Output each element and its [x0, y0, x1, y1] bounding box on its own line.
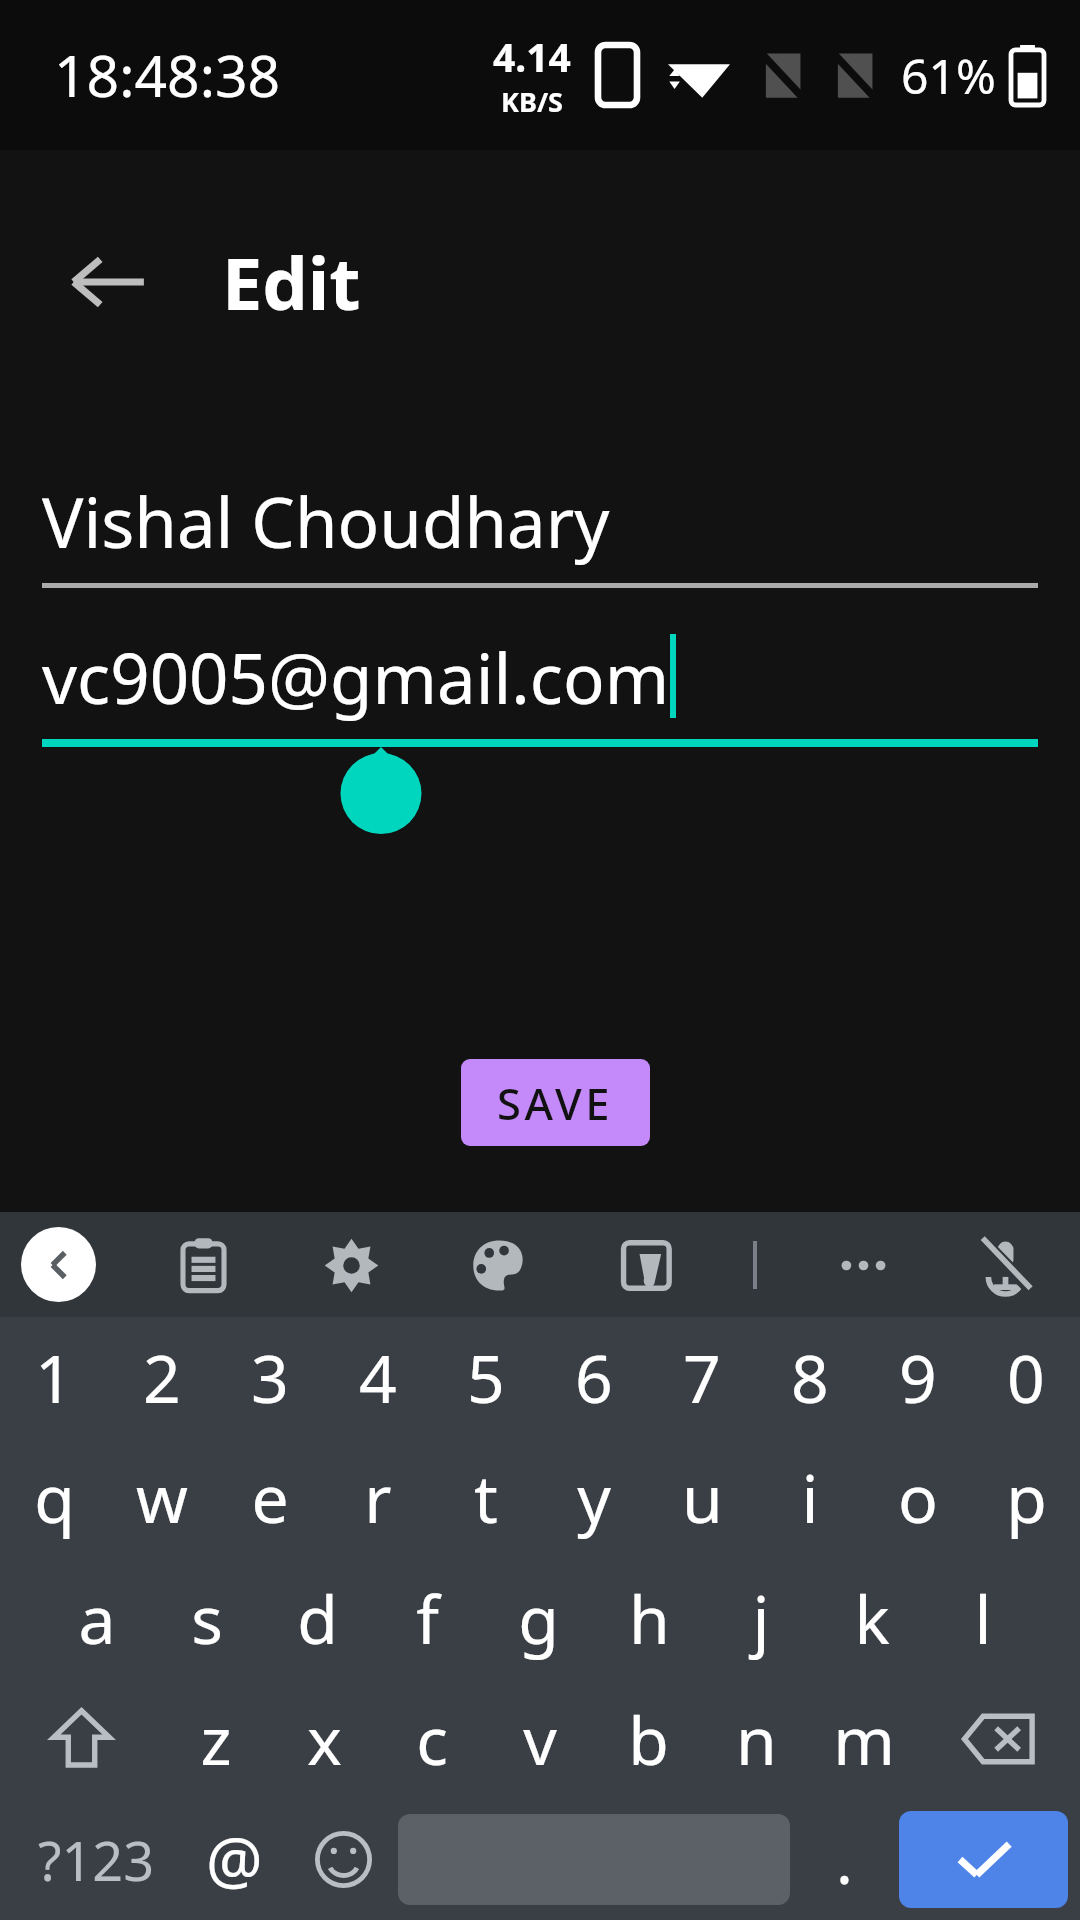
staticText: 0	[1007, 1332, 1045, 1422]
button[interactable]: a	[42, 1557, 152, 1678]
button[interactable]: s	[152, 1557, 262, 1678]
button[interactable]: Back	[36, 210, 180, 354]
button[interactable]: 4	[324, 1317, 432, 1437]
button[interactable]: b	[594, 1678, 702, 1799]
button[interactable]: More options	[821, 1223, 905, 1307]
button[interactable]: t	[432, 1437, 540, 1557]
button[interactable]: 2	[108, 1317, 216, 1437]
staticText: 7	[683, 1332, 721, 1422]
button[interactable]: Backspace	[918, 1678, 1080, 1799]
staticText: u	[682, 1452, 723, 1542]
button[interactable]: Theme	[457, 1223, 541, 1307]
staticText: 4.14	[493, 30, 571, 83]
button[interactable]: l	[927, 1557, 1038, 1678]
button[interactable]: Emoji	[289, 1799, 398, 1920]
button[interactable]: Collapse toolbar	[21, 1227, 96, 1302]
staticText: 9	[899, 1332, 937, 1422]
button[interactable]: x	[270, 1678, 378, 1799]
button[interactable]: Done	[899, 1811, 1068, 1908]
staticText: n	[736, 1694, 777, 1784]
button[interactable]: .	[790, 1799, 899, 1920]
button[interactable]: u	[648, 1437, 756, 1557]
staticText: j	[752, 1573, 770, 1663]
button[interactable]: vc9005@gmail.com	[42, 630, 1038, 837]
button[interactable]: Resize keyboard	[605, 1223, 689, 1307]
button[interactable]: ?123	[12, 1799, 180, 1920]
staticText: 8	[791, 1332, 829, 1422]
staticText: p	[1006, 1452, 1047, 1542]
staticText: a	[78, 1573, 116, 1663]
staticText: q	[34, 1452, 75, 1542]
button[interactable]: p	[972, 1437, 1080, 1557]
staticText: vc9005@gmail.com	[42, 630, 670, 724]
staticText: k	[854, 1573, 890, 1663]
button[interactable]: 9	[864, 1317, 972, 1437]
staticText: Edit	[222, 233, 361, 331]
staticText: z	[200, 1694, 232, 1784]
button[interactable]: 1	[0, 1317, 108, 1437]
button[interactable]: i	[756, 1437, 864, 1557]
button[interactable]: o	[864, 1437, 972, 1557]
button[interactable]: z	[162, 1678, 270, 1799]
staticText: g	[518, 1573, 559, 1663]
staticText: h	[629, 1573, 670, 1663]
button[interactable]: r	[324, 1437, 432, 1557]
button[interactable]: Settings	[309, 1223, 393, 1307]
staticText: w	[136, 1452, 188, 1542]
staticText: l	[974, 1573, 992, 1663]
button[interactable]: Clipboard	[161, 1223, 245, 1307]
button[interactable]: h	[594, 1557, 705, 1678]
button[interactable]: e	[216, 1437, 324, 1557]
button[interactable]: 3	[216, 1317, 324, 1437]
button[interactable]: v	[486, 1678, 594, 1799]
button[interactable]: m	[810, 1678, 918, 1799]
button[interactable]: n	[702, 1678, 810, 1799]
button[interactable]: g	[483, 1557, 594, 1678]
button[interactable]: 8	[756, 1317, 864, 1437]
staticText: y	[577, 1452, 611, 1542]
button[interactable]: f	[372, 1557, 483, 1678]
staticText: 3	[251, 1332, 289, 1422]
staticText: .	[836, 1817, 853, 1903]
staticText: b	[628, 1694, 669, 1784]
staticText: 61%	[901, 43, 996, 108]
staticText: m	[833, 1694, 895, 1784]
button[interactable]: 0	[972, 1317, 1080, 1437]
staticText: Vishal Choudhary	[42, 474, 610, 568]
button[interactable]: k	[816, 1557, 927, 1678]
button[interactable]: 5	[432, 1317, 540, 1437]
staticText: 18:48:38	[54, 36, 281, 114]
button[interactable]: SAVE	[461, 1059, 650, 1146]
staticText: s	[191, 1573, 223, 1663]
staticText: 2	[143, 1332, 181, 1422]
staticText: SAVE	[497, 1073, 614, 1132]
staticText: f	[416, 1573, 439, 1663]
staticText: t	[474, 1452, 498, 1542]
staticText: KB/S	[501, 83, 563, 120]
button[interactable]: y	[540, 1437, 648, 1557]
button[interactable]: q	[0, 1437, 108, 1557]
staticText: r	[364, 1452, 392, 1542]
staticText: o	[898, 1452, 938, 1542]
staticText: e	[251, 1452, 289, 1542]
staticText: 5	[467, 1332, 505, 1422]
button[interactable]: @	[180, 1799, 289, 1920]
staticText: 4	[359, 1332, 397, 1422]
staticText: @	[206, 1817, 263, 1903]
button[interactable]: Vishal Choudhary	[42, 474, 1038, 588]
staticText: c	[416, 1694, 448, 1784]
staticText: i	[801, 1452, 819, 1542]
button[interactable]: j	[705, 1557, 816, 1678]
button[interactable]: c	[378, 1678, 486, 1799]
button[interactable]: 7	[648, 1317, 756, 1437]
staticText: ?123	[38, 1823, 155, 1897]
button[interactable]: Shift	[0, 1678, 162, 1799]
button[interactable]: 6	[540, 1317, 648, 1437]
staticText: 1	[35, 1332, 73, 1422]
staticText: d	[297, 1573, 338, 1663]
staticText: v	[523, 1694, 557, 1784]
button[interactable]: w	[108, 1437, 216, 1557]
button[interactable]: Microphone off	[963, 1223, 1047, 1307]
button[interactable]: d	[262, 1557, 372, 1678]
